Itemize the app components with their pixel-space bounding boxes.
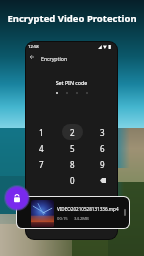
staticText: 12:58 — [28, 44, 39, 50]
staticText: Set PIN code — [26, 79, 117, 86]
staticText: 4 — [39, 143, 44, 154]
button[interactable]: More options — [120, 197, 129, 228]
button[interactable]: 6 — [87, 140, 117, 156]
staticText: 9 — [100, 159, 105, 170]
staticText: 5 — [70, 143, 75, 154]
staticText: 2 — [70, 127, 75, 138]
other: Backspace — [99, 177, 106, 184]
staticText: 34.2MB — [74, 216, 89, 222]
button[interactable]: Encrypted — [4, 185, 30, 211]
staticText: 1 — [39, 127, 44, 138]
button[interactable]: 9 — [87, 156, 117, 172]
button[interactable]: 7 — [26, 156, 57, 172]
staticText: VIDEO20210528131336.mp4 — [57, 206, 119, 212]
staticText: 00:15 — [57, 216, 68, 222]
button[interactable]: 1 — [26, 124, 57, 140]
button[interactable]: 0 — [57, 172, 87, 188]
button[interactable]: Backspace — [87, 172, 117, 188]
staticText: 8 — [70, 159, 75, 170]
staticText: 7 — [39, 159, 44, 170]
button[interactable]: 4 — [26, 140, 57, 156]
button[interactable]: VIDEO20210528131336.mp4 — [17, 197, 129, 228]
button[interactable]: Back — [27, 52, 36, 61]
button[interactable]: 5 — [57, 140, 87, 156]
staticText: 6 — [100, 143, 105, 154]
staticText: 0 — [70, 175, 75, 186]
button[interactable]: 8 — [57, 156, 87, 172]
staticText: Encryption — [41, 55, 68, 62]
button[interactable]: 2 — [57, 124, 87, 140]
button[interactable]: 3 — [87, 124, 117, 140]
staticText: Encrypted Video Protection — [0, 12, 144, 25]
staticText: 3 — [100, 127, 105, 138]
